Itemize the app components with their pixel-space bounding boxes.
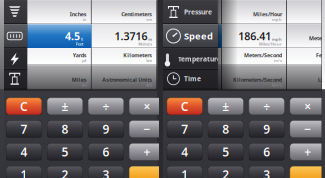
button[interactable]: Plus minus [208,98,243,115]
button[interactable]: Divide [249,98,284,115]
staticText: ± [61,98,68,114]
button[interactable]: 4.5 [27,24,92,48]
button[interactable]: Light Speed [287,65,325,89]
button[interactable]: Centimeters [92,0,157,24]
button[interactable]: 3 [88,166,124,178]
button[interactable]: 7 [6,121,42,138]
button[interactable]: 6 [249,143,284,160]
staticText: 4.5 [65,29,80,43]
button[interactable]: 5 [47,143,83,160]
button[interactable]: 8 [47,121,83,138]
staticText: Feet [76,41,84,46]
staticText: Kilometers/Minute [168,11,217,18]
button[interactable]: 5 [208,143,243,160]
button[interactable]: 4 [167,143,202,160]
button[interactable]: Multiply [290,98,325,115]
button[interactable]: Clear [6,98,42,115]
button[interactable]: Divide [88,98,124,115]
staticText: in [83,17,87,22]
button[interactable]: Minus [129,121,165,138]
staticText: 9 [263,121,270,137]
button[interactable]: 1 [6,166,42,178]
button[interactable]: 7 [167,121,202,138]
button[interactable]: Knots [287,0,325,24]
staticText: 8 [222,121,229,137]
staticText: mph [272,17,282,22]
staticText: C [181,98,189,114]
staticText: Speed [184,30,213,42]
staticText: 6 [102,144,109,160]
button[interactable]: Miles [27,65,92,89]
staticText: × [304,98,311,114]
staticText: 7 [20,121,27,137]
button[interactable]: 4 [6,143,42,160]
button[interactable]: Plus [129,143,165,160]
staticText: AU [146,82,152,87]
button[interactable]: Speed [163,24,218,48]
button[interactable]: Time [163,68,218,89]
button[interactable]: 1.3716 [92,24,157,48]
button[interactable]: 1 [167,166,202,178]
button[interactable]: Multiply [129,98,165,115]
button[interactable]: Plus [290,143,325,160]
staticText: Miles [72,76,87,83]
staticText: 6 [263,144,270,160]
button[interactable]: Pressure [163,0,218,24]
button[interactable]: Clear [167,98,202,115]
button[interactable]: Equals [129,166,165,178]
button[interactable]: Astronomical Units [92,65,157,89]
staticText: yd [82,58,87,63]
button[interactable]: Equals [290,166,325,178]
button[interactable]: Meters/Second [222,48,287,65]
staticText: ÷ [263,98,270,114]
staticText: km/s [272,82,282,87]
staticText: Feet/Second [316,52,325,59]
button[interactable]: Minus [290,121,325,138]
button[interactable]: 6 [88,143,124,160]
staticText: − [143,121,150,137]
staticText: m [148,36,152,42]
button[interactable]: 3 [249,166,284,178]
button[interactable]: Kilometers/Second [222,65,287,89]
staticText: m/s [274,58,282,63]
staticText: 1.3716 [115,29,148,43]
button[interactable]: 9 [88,121,124,138]
button[interactable]: Length [2,24,27,48]
staticText: + [304,144,311,160]
button[interactable]: Feet/Second [287,48,325,65]
button[interactable]: Knots [157,48,222,65]
button[interactable]: Meters/Second [287,24,325,48]
staticText: 2 [61,167,68,178]
staticText: 5 [61,144,68,160]
button[interactable]: 8 [208,121,243,138]
button[interactable]: Kilometers/Minute [157,0,222,24]
staticText: 8 [61,121,68,137]
button[interactable]: Temperature [163,48,218,70]
button[interactable]: Acceleration [2,0,27,24]
button[interactable]: Energy [2,48,27,70]
button[interactable]: Yards [27,48,92,65]
button[interactable]: 300 [157,24,222,48]
button[interactable]: 9 [249,121,284,138]
staticText: Meters [138,41,152,46]
staticText: km/h [203,36,214,42]
button[interactable]: Kilometers [92,48,157,65]
staticText: Astronomical Units [102,76,152,83]
button[interactable]: 186.41 [222,24,287,48]
button[interactable]: Miles/Hour [222,0,287,24]
staticText: Light Speed [318,76,325,83]
staticText: Temperature [178,55,221,63]
button[interactable]: Pressure [2,68,27,89]
staticText: C [20,98,28,114]
staticText: Inches [70,11,87,18]
button[interactable]: 2 [208,166,243,178]
button[interactable]: Plus minus [47,98,83,115]
button[interactable]: Inches [27,0,92,24]
staticText: 9 [102,121,109,137]
staticText: mph [272,36,282,42]
button[interactable]: 2 [47,166,83,178]
staticText: Kilometers/Second [233,76,282,83]
button[interactable]: Mach [157,65,222,89]
